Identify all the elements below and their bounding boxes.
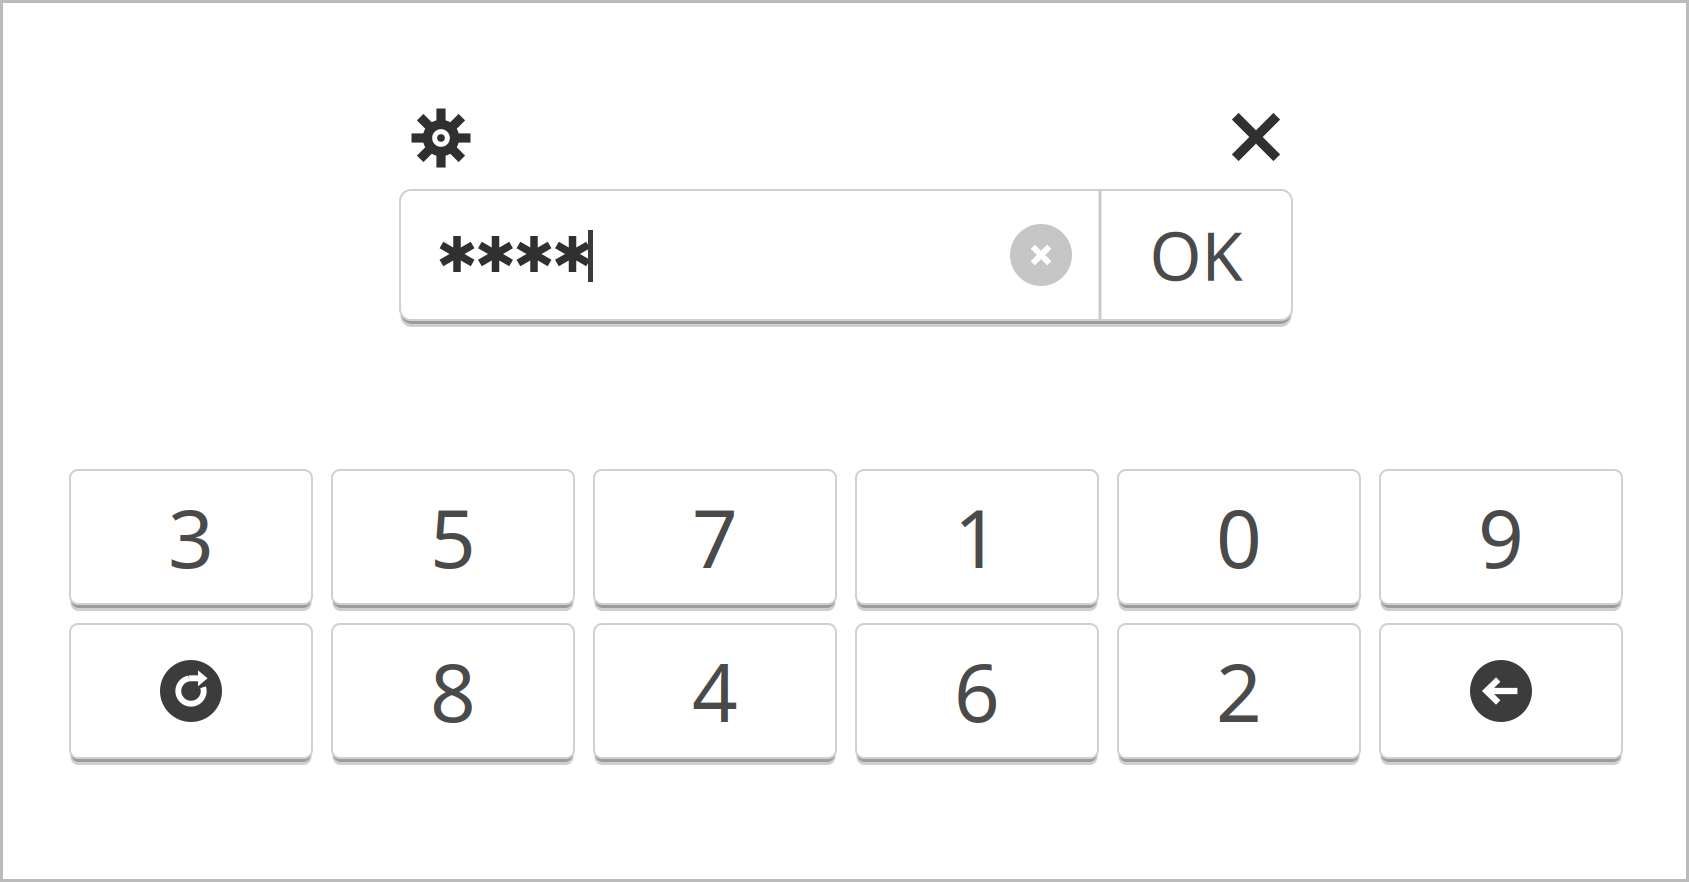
staticText: 5 xyxy=(430,484,476,590)
button[interactable]: Settings xyxy=(399,96,483,180)
button[interactable]: 7 xyxy=(594,470,836,604)
button[interactable]: 1 xyxy=(856,470,1098,604)
staticText: OK xyxy=(1149,211,1242,299)
button[interactable]: 4 xyxy=(594,624,836,758)
button[interactable]: 3 xyxy=(70,470,312,604)
staticText: 2 xyxy=(1216,638,1262,744)
button[interactable]: Clear text xyxy=(1010,224,1072,286)
button[interactable]: 9 xyxy=(1380,470,1622,604)
staticText: 4 xyxy=(692,638,738,744)
button[interactable]: Enter xyxy=(70,624,312,758)
button[interactable]: 8 xyxy=(332,624,574,758)
staticText: 1 xyxy=(954,484,1000,590)
button[interactable]: 2 xyxy=(1118,624,1360,758)
button[interactable]: Backspace xyxy=(1380,624,1622,758)
staticText: 7 xyxy=(692,484,738,590)
button[interactable]: 6 xyxy=(856,624,1098,758)
button[interactable]: 0 xyxy=(1118,470,1360,604)
staticText: 9 xyxy=(1478,484,1524,590)
button[interactable]: Close xyxy=(1214,95,1298,179)
button[interactable]: OK xyxy=(1100,190,1292,320)
staticText: 3 xyxy=(168,484,214,590)
button[interactable]: 5 xyxy=(332,470,574,604)
staticText: 0 xyxy=(1216,484,1262,590)
staticText: 8 xyxy=(430,638,476,744)
staticText: 6 xyxy=(954,638,1000,744)
